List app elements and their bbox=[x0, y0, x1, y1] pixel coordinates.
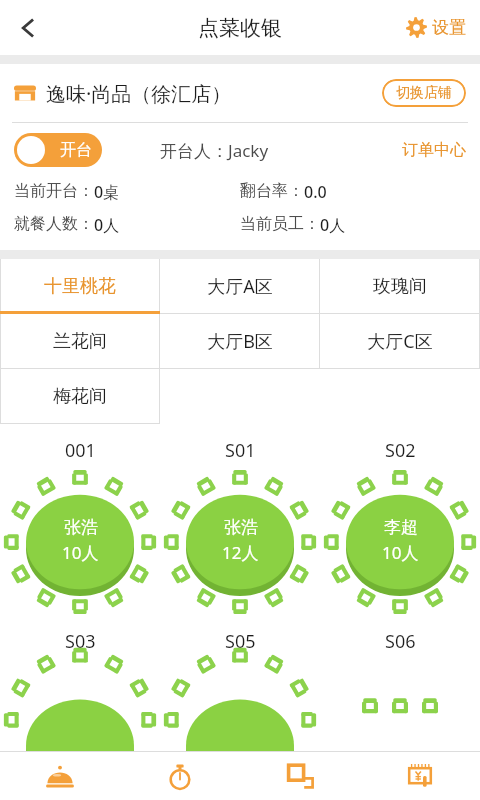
button[interactable]: 大厅B区 bbox=[160, 314, 320, 369]
staticText: 兰花间 bbox=[53, 330, 107, 353]
staticText: S05 bbox=[225, 629, 256, 654]
button[interactable]: 大厅C区 bbox=[320, 314, 480, 369]
staticText: 10人 bbox=[382, 541, 419, 564]
staticText: 张浩 bbox=[64, 517, 98, 538]
button[interactable]: 切换店铺 bbox=[382, 79, 466, 107]
button[interactable]: Tables bbox=[240, 752, 360, 800]
button[interactable]: 梅花间 bbox=[0, 369, 160, 424]
button[interactable]: 玫瑰间 bbox=[320, 259, 480, 314]
staticText: 0人 bbox=[320, 214, 346, 236]
staticText: 大厅C区 bbox=[367, 329, 433, 354]
staticText: 梅花间 bbox=[53, 385, 107, 408]
staticText: 张浩 bbox=[224, 517, 258, 538]
button[interactable]: Dishes bbox=[0, 752, 120, 800]
staticText: 大厅B区 bbox=[207, 329, 273, 354]
button[interactable]: 001 bbox=[5, 438, 155, 617]
staticText: 李超 bbox=[384, 517, 418, 538]
button[interactable]: S06 bbox=[325, 629, 475, 730]
staticText: S02 bbox=[385, 438, 416, 463]
staticText: 当前开台： bbox=[14, 181, 94, 201]
staticText: 订单中心 bbox=[402, 140, 466, 160]
button[interactable]: 设置 bbox=[398, 0, 480, 55]
staticText: S01 bbox=[225, 438, 256, 463]
button[interactable]: Billing bbox=[360, 752, 480, 800]
staticText: 开台 bbox=[60, 140, 92, 160]
button[interactable]: 开台 bbox=[14, 133, 102, 167]
button[interactable]: S02 bbox=[325, 438, 475, 617]
staticText: 十里桃花 bbox=[44, 275, 116, 298]
staticText: 当前员工： bbox=[240, 214, 320, 234]
staticText: 玫瑰间 bbox=[373, 275, 427, 298]
staticText: S06 bbox=[385, 629, 416, 654]
staticText: S03 bbox=[65, 629, 96, 654]
staticText: 切换店铺 bbox=[396, 84, 452, 102]
staticText: 12人 bbox=[222, 541, 259, 564]
staticText: 点菜收银 bbox=[198, 15, 282, 41]
button[interactable]: S03 bbox=[5, 629, 155, 730]
button[interactable]: S05 bbox=[165, 629, 315, 730]
staticText: 大厅A区 bbox=[207, 274, 273, 299]
staticText: 翻台率： bbox=[240, 181, 304, 201]
button[interactable]: 兰花间 bbox=[0, 314, 160, 369]
staticText: 001 bbox=[65, 438, 96, 463]
staticText: 逸味·尚品（徐汇店） bbox=[46, 80, 232, 107]
staticText: 开台人：Jacky bbox=[160, 139, 269, 162]
staticText: 10人 bbox=[62, 541, 99, 564]
staticText: 0.0 bbox=[304, 181, 327, 203]
button[interactable]: S01 bbox=[165, 438, 315, 617]
button[interactable]: Timer bbox=[120, 752, 240, 800]
button[interactable]: 大厅A区 bbox=[160, 259, 320, 314]
button[interactable]: Back bbox=[0, 0, 56, 55]
staticText: 就餐人数： bbox=[14, 214, 94, 234]
staticText: 0桌 bbox=[94, 181, 120, 203]
staticText: 设置 bbox=[432, 17, 466, 38]
button[interactable]: 订单中心 bbox=[402, 140, 466, 160]
staticText: 0人 bbox=[94, 214, 120, 236]
button[interactable]: 十里桃花 bbox=[0, 259, 160, 314]
